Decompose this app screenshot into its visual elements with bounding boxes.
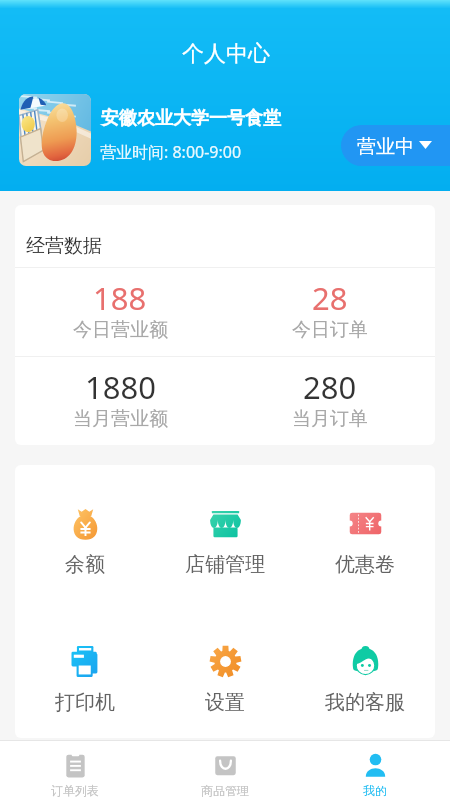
- staticText: 安徽农业大学一号食堂: [101, 107, 281, 130]
- staticText: 营业中: [357, 135, 414, 159]
- staticText: 打印机: [55, 690, 115, 715]
- button[interactable]: 订单列表: [0, 741, 150, 800]
- staticText: 今日营业额: [73, 318, 168, 342]
- button[interactable]: 店铺头像: [19, 94, 91, 166]
- button[interactable]: 我的客服: [295, 644, 435, 712]
- staticText: 280: [303, 366, 357, 408]
- staticText: 我的: [363, 783, 387, 798]
- button[interactable]: 商品管理: [150, 741, 300, 800]
- button[interactable]: 188: [15, 268, 225, 356]
- staticText: 当月订单: [292, 407, 368, 431]
- staticText: 余额: [65, 552, 105, 577]
- button[interactable]: 28: [225, 268, 435, 356]
- button[interactable]: 我的: [300, 741, 450, 800]
- button[interactable]: 营业中: [341, 125, 450, 166]
- staticText: 订单列表: [51, 783, 99, 798]
- staticText: 商品管理: [201, 783, 249, 798]
- staticText: 188: [93, 277, 147, 319]
- staticText: 设置: [205, 690, 245, 715]
- button[interactable]: 打印机: [15, 644, 155, 712]
- staticText: 1880: [85, 366, 156, 408]
- staticText: 优惠卷: [335, 552, 395, 577]
- staticText: 今日订单: [292, 318, 368, 342]
- staticText: 店铺管理: [185, 552, 265, 577]
- button[interactable]: 1880: [15, 357, 225, 445]
- button[interactable]: 优惠卷: [295, 506, 435, 574]
- staticText: 当月营业额: [73, 407, 168, 431]
- staticText: 我的客服: [325, 690, 405, 715]
- button[interactable]: 280: [225, 357, 435, 445]
- button[interactable]: 店铺管理: [155, 506, 295, 574]
- staticText: 28: [312, 277, 348, 319]
- button[interactable]: 设置: [155, 644, 295, 712]
- staticText: 个人中心: [182, 40, 270, 68]
- button[interactable]: 余额: [15, 506, 155, 574]
- staticText: 经营数据: [26, 234, 102, 258]
- staticText: 营业时间: 8:00-9:00: [100, 141, 242, 163]
